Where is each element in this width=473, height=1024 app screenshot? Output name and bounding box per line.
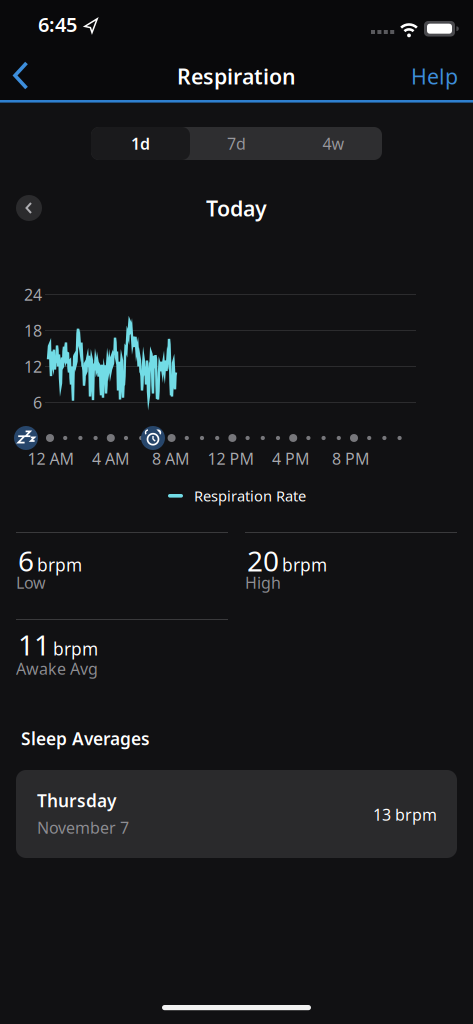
button[interactable]: 1d — [91, 127, 190, 160]
button[interactable]: Help — [395, 54, 473, 98]
button[interactable]: Thursday — [16, 770, 457, 858]
button[interactable]: Back — [0, 53, 47, 98]
staticText: 4 PM — [272, 448, 310, 469]
button[interactable]: 4w — [285, 127, 382, 160]
staticText: 6:45 — [38, 11, 77, 38]
staticText: High — [245, 572, 281, 593]
staticText: brpm — [37, 553, 82, 576]
staticText: 8 PM — [332, 448, 370, 469]
staticText: 1d — [131, 133, 150, 154]
staticText: Respiration — [177, 62, 296, 90]
button[interactable]: 7d — [188, 127, 285, 160]
staticText: November 7 — [37, 817, 129, 838]
staticText: 12 PM — [207, 448, 254, 469]
staticText: Respiration Rate — [194, 486, 306, 505]
staticText: 12 AM — [27, 448, 74, 469]
staticText: brpm — [53, 637, 98, 660]
staticText: Awake Avg — [16, 658, 98, 679]
staticText: 4 AM — [92, 448, 130, 469]
staticText: 24 — [24, 284, 42, 305]
staticText: Low — [16, 572, 46, 593]
staticText: Sleep Averages — [21, 727, 150, 750]
staticText: 20 — [247, 542, 279, 579]
staticText: 8 AM — [152, 448, 190, 469]
staticText: Thursday — [37, 789, 116, 812]
staticText: 11 — [18, 626, 50, 663]
staticText: 6 — [33, 392, 42, 413]
staticText: 7d — [227, 133, 246, 154]
staticText: Help — [411, 62, 458, 90]
staticText: 13 brpm — [373, 804, 437, 825]
staticText: 4w — [322, 133, 344, 154]
staticText: brpm — [282, 553, 327, 576]
staticText: 6 — [18, 542, 34, 579]
staticText: 12 — [24, 356, 42, 377]
staticText: 18 — [24, 320, 42, 341]
staticText: Today — [206, 194, 267, 222]
button[interactable]: Previous day — [16, 195, 42, 221]
